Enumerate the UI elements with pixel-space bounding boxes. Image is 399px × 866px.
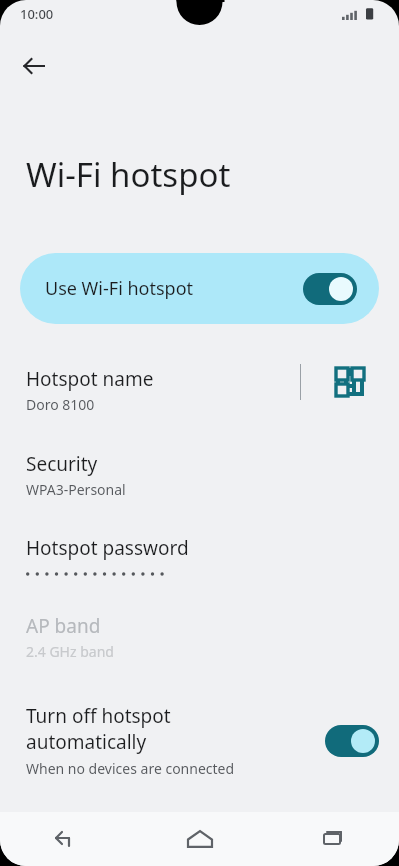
staticText: Hotspot name [26,366,154,392]
button[interactable]: Back [0,812,133,866]
staticText: When no devices are connected [26,759,235,778]
button[interactable]: Back [10,42,58,90]
staticText: AP band [26,613,101,639]
staticText: Wi-Fi hotspot [26,152,231,197]
staticText: 2.4 GHz band [26,642,114,661]
staticText: 10:00 [20,5,54,23]
staticText: Use Wi-Fi hotspot [45,276,303,301]
staticText: WPA3-Personal [26,480,126,499]
staticText: Hotspot password [26,535,189,561]
staticText: Doro 8100 [26,395,95,414]
button[interactable]: Turn off hotspot automatically [0,703,399,778]
button[interactable]: Use Wi-Fi hotspot [20,253,379,324]
button[interactable]: Home [133,812,266,866]
button[interactable]: Share hotspot QR code [301,364,399,414]
button[interactable]: Security [0,451,399,499]
button[interactable]: Hotspot name [0,364,300,414]
staticText: Max Connections [26,818,180,844]
button[interactable]: Recent apps [266,812,399,866]
button[interactable]: Hotspot password [0,535,399,579]
staticText: Turn off hotspot automatically [26,703,171,755]
staticText: Security [26,451,98,477]
